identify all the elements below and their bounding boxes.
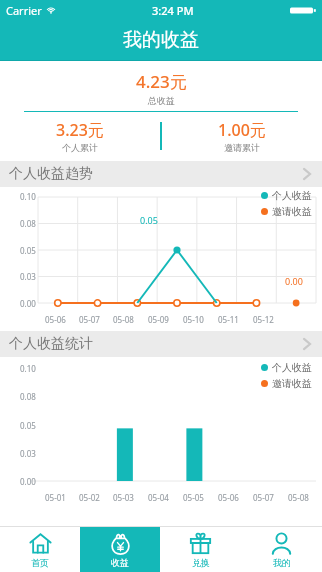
staticText: 05-06 [45,314,66,325]
button[interactable]: 收益 [80,527,160,572]
button[interactable]: 我的 [241,527,322,572]
button[interactable]: 个人收益趋势 [0,161,322,187]
staticText: 0.03 [20,448,36,459]
staticText: 0.03 [20,271,36,282]
staticText: 0.05 [20,420,36,431]
staticText: 我的收益 [123,28,199,52]
staticText: 05-09 [148,314,169,325]
staticText: 总收益 [148,95,175,106]
staticText: 05-12 [253,314,274,325]
staticText: 1.00元 [218,119,266,141]
staticText: 我的 [273,557,291,568]
staticText: 邀请收益 [272,205,312,218]
staticText: Carrier [6,3,42,18]
staticText: 4.23元 [136,70,187,93]
staticText: 首页 [31,557,49,568]
staticText: 05-06 [218,492,239,503]
staticText: 05-01 [45,492,66,503]
staticText: 0.08 [20,391,36,402]
staticText: 邀请收益 [272,377,312,390]
button[interactable]: 个人收益统计 [0,331,322,357]
staticText: 05-07 [253,492,274,503]
staticText: 05-08 [113,314,134,325]
staticText: 05-05 [183,492,204,503]
staticText: 个人收益趋势 [9,165,93,183]
staticText: 收益 [111,557,129,568]
button[interactable]: 兑换 [160,527,241,572]
staticText: 05-07 [79,314,100,325]
staticText: 个人收益统计 [9,335,93,353]
staticText: 0.00 [20,298,36,309]
staticText: 05-04 [148,492,169,503]
staticText: 0.05 [20,245,36,256]
staticText: 3:24 PM [152,3,194,18]
staticText: 个人累计 [62,142,98,153]
staticText: 05-10 [183,314,204,325]
staticText: 0.05 [140,214,158,226]
staticText: 个人收益 [272,189,312,202]
button[interactable]: 首页 [0,527,80,572]
staticText: 05-08 [288,492,309,503]
staticText: 个人收益 [272,361,312,374]
staticText: 05-03 [113,492,134,503]
staticText: 邀请累计 [224,142,260,153]
staticText: 3.23元 [56,119,104,141]
staticText: 0.00 [20,476,36,487]
staticText: 0.08 [20,218,36,229]
staticText: 0.10 [20,363,36,374]
staticText: 05-11 [218,314,239,325]
staticText: 0.00 [285,275,303,287]
staticText: 0.10 [20,191,36,202]
staticText: 05-02 [79,492,100,503]
staticText: 兑换 [192,557,210,568]
